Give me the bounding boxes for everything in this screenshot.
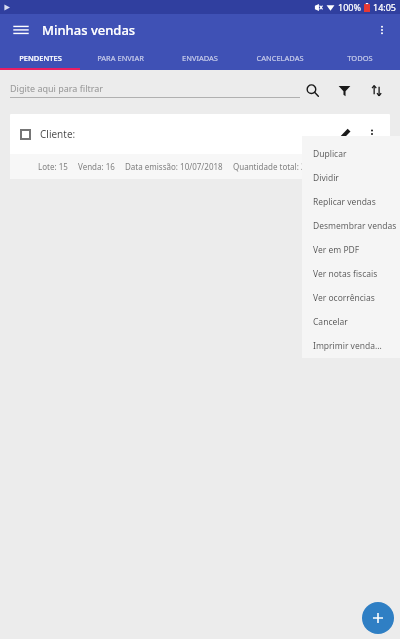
staticText: Ver em PDF: [313, 244, 360, 256]
button[interactable]: Mais opções da venda: [362, 124, 382, 144]
button[interactable]: Ver em PDF: [302, 238, 400, 262]
staticText: 100%: [338, 1, 361, 13]
button[interactable]: Ver ocorrências: [302, 286, 400, 310]
staticText: TODOS: [347, 53, 373, 63]
staticText: Digite aqui para filtrar: [10, 82, 104, 94]
button[interactable]: Pesquisar: [302, 80, 322, 100]
button[interactable]: Editar: [334, 124, 354, 144]
staticText: Desmembrar vendas: [313, 220, 397, 232]
staticText: Minhas vendas: [42, 21, 136, 39]
button[interactable]: Replicar vendas: [302, 190, 400, 214]
button[interactable]: Dividir: [302, 166, 400, 190]
staticText: Data emissão: 10/07/2018: [125, 161, 223, 172]
staticText: Ver notas fiscais: [313, 268, 378, 280]
button[interactable]: Cancelar: [302, 310, 400, 334]
button[interactable]: Menu: [10, 19, 32, 41]
staticText: Duplicar: [313, 148, 347, 160]
staticText: CANCELADAS: [256, 53, 304, 63]
staticText: Cliente:: [40, 127, 76, 141]
button[interactable]: Filtrar: [334, 80, 354, 100]
staticText: 14:05: [373, 1, 397, 13]
button[interactable]: Digite aqui para filtrar: [10, 82, 300, 98]
button[interactable]: Nova venda: [362, 602, 394, 634]
button[interactable]: Imprimir venda...: [302, 334, 400, 358]
staticText: Imprimir venda...: [313, 340, 382, 352]
button[interactable]: Mais opções: [370, 18, 394, 42]
button[interactable]: Selecionar venda: [20, 129, 31, 140]
button[interactable]: Selecionar venda: [10, 114, 390, 179]
button[interactable]: Desmembrar vendas: [302, 214, 400, 238]
staticText: Ver ocorrências: [313, 292, 375, 304]
staticText: PENDENTES: [19, 53, 62, 63]
staticText: PARA ENVIAR: [97, 53, 144, 63]
staticText: Lote: 15: [38, 161, 68, 172]
staticText: Dividir: [313, 172, 339, 184]
staticText: Quantidade total: 2: [233, 161, 306, 172]
staticText: Cancelar: [313, 316, 348, 328]
button[interactable]: Ordenar: [366, 80, 386, 100]
button[interactable]: Ver notas fiscais: [302, 262, 400, 286]
staticText: ENVIADAS: [182, 53, 218, 63]
button[interactable]: PENDENTES: [0, 46, 80, 70]
button[interactable]: CANCELADAS: [240, 46, 320, 70]
staticText: Venda: 16: [78, 161, 115, 172]
button[interactable]: TODOS: [320, 46, 400, 70]
button[interactable]: Duplicar: [302, 142, 400, 166]
staticText: Replicar vendas: [313, 196, 376, 208]
button[interactable]: ENVIADAS: [160, 46, 240, 70]
button[interactable]: PARA ENVIAR: [80, 46, 160, 70]
